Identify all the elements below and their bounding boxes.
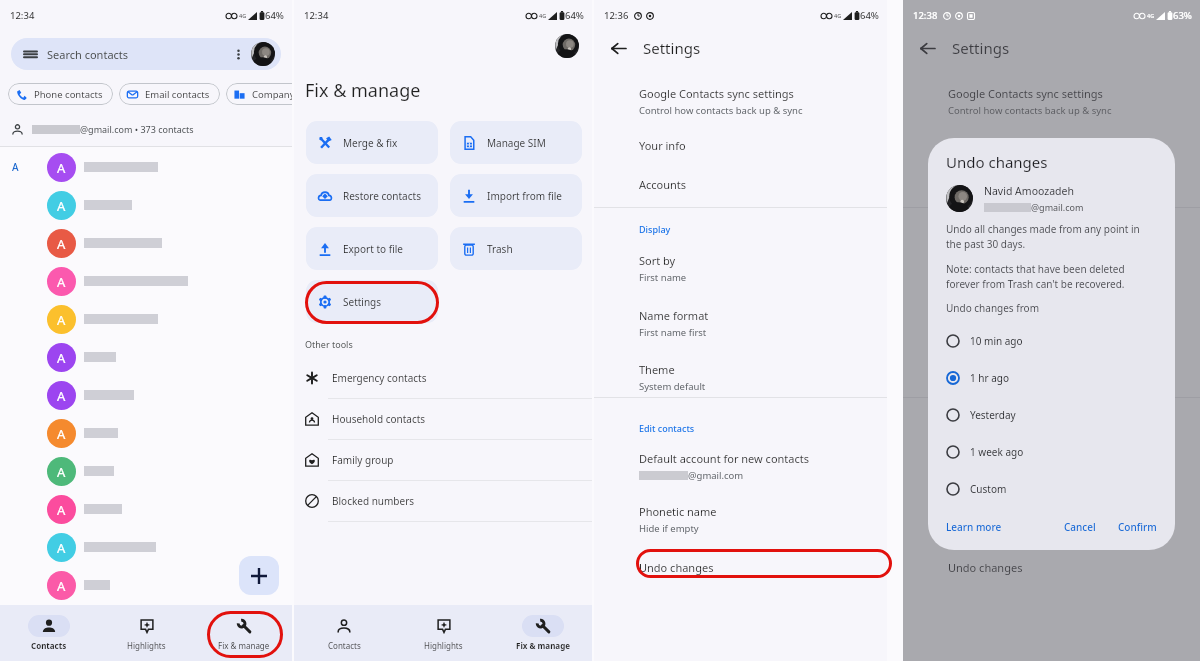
button[interactable]: Merge & fix <box>306 121 438 164</box>
button[interactable]: Your info <box>903 138 1200 153</box>
button[interactable]: Fix & manage <box>493 611 592 655</box>
other: More options <box>232 48 245 61</box>
button[interactable]: Theme <box>903 362 1200 393</box>
staticText: Merge & fix <box>343 136 398 150</box>
staticText: A <box>57 159 66 177</box>
staticText: System default <box>948 380 1015 393</box>
button[interactable]: Confirm <box>1118 516 1157 538</box>
button[interactable]: Contacts <box>0 611 98 655</box>
button[interactable]: A <box>0 490 292 528</box>
staticText: Default account for new contacts <box>948 451 1118 466</box>
button[interactable]: Custom <box>946 470 1157 507</box>
button[interactable]: Cancel <box>1064 516 1096 538</box>
staticText: Undo changes <box>639 560 714 575</box>
button[interactable]: Undo changes <box>594 556 887 578</box>
button[interactable]: @gmail.com • 373 contacts <box>0 118 292 140</box>
button[interactable]: Back <box>915 36 939 60</box>
staticText: Settings <box>952 38 1010 58</box>
button[interactable]: A <box>0 376 292 414</box>
button[interactable]: A <box>0 300 292 338</box>
button[interactable]: Fix & manage <box>195 611 292 655</box>
staticText: 12:38 <box>913 9 938 22</box>
button[interactable]: Sort by <box>903 253 1200 284</box>
staticText: Export to file <box>343 242 403 256</box>
staticText: A <box>57 349 66 367</box>
button[interactable]: Household contacts <box>294 399 592 439</box>
button[interactable]: Google Contacts sync settings <box>594 86 887 117</box>
button[interactable]: A <box>0 414 292 452</box>
staticText: Search contacts <box>47 47 129 62</box>
button[interactable]: A <box>0 262 292 300</box>
button[interactable]: Phone contacts <box>8 83 113 105</box>
staticText: 64% <box>265 9 284 22</box>
staticText: Company <box>252 88 292 101</box>
staticText: Sort by <box>948 253 985 268</box>
button[interactable]: A <box>0 338 292 376</box>
button[interactable]: Default account for new contacts <box>594 451 887 482</box>
staticText: Fix & manage <box>516 640 570 651</box>
button[interactable]: Create contact <box>239 556 279 595</box>
staticText: Custom <box>970 482 1007 496</box>
staticText: A <box>57 425 66 443</box>
button[interactable]: Default account for new contacts <box>903 451 1200 482</box>
button[interactable]: Theme <box>594 362 887 393</box>
button[interactable]: Accounts <box>594 177 887 192</box>
button[interactable]: Email contacts <box>119 83 220 105</box>
button[interactable]: Phonetic name <box>594 504 887 535</box>
button[interactable]: Yesterday <box>946 396 1157 433</box>
button[interactable]: Trash <box>450 227 582 270</box>
button[interactable]: Account <box>251 42 275 66</box>
button[interactable]: Highlights <box>98 611 195 655</box>
button[interactable]: Menu <box>11 38 281 70</box>
staticText: 12:34 <box>10 9 35 22</box>
button[interactable]: Restore contacts <box>306 174 438 217</box>
button[interactable]: Sort by <box>594 253 887 284</box>
staticText: Blocked numbers <box>332 494 415 508</box>
button[interactable]: 10 min ago <box>946 322 1157 359</box>
staticText: First name first <box>639 326 707 339</box>
staticText: Restore contacts <box>343 189 421 203</box>
staticText: 1 week ago <box>970 445 1024 459</box>
button[interactable]: Import from file <box>450 174 582 217</box>
button[interactable]: Emergency contacts <box>294 358 592 398</box>
button[interactable]: A <box>0 148 292 186</box>
button[interactable]: Back <box>606 36 630 60</box>
button[interactable]: A <box>0 186 292 224</box>
staticText: System default <box>639 380 706 393</box>
button[interactable]: A <box>0 452 292 490</box>
button[interactable]: Highlights <box>394 611 493 655</box>
button[interactable]: Google Contacts sync settings <box>903 86 1200 117</box>
button[interactable]: Name format <box>903 308 1200 339</box>
button[interactable]: Manage SIM <box>450 121 582 164</box>
button[interactable]: 1 week ago <box>946 433 1157 470</box>
button[interactable]: A <box>0 566 292 604</box>
staticText: Hide if empty <box>639 522 699 535</box>
button[interactable]: Contacts <box>294 611 394 655</box>
button[interactable]: Export to file <box>306 227 438 270</box>
button[interactable]: Blocked numbers <box>294 481 592 521</box>
button[interactable]: Company <box>226 83 292 105</box>
staticText: 4G <box>834 12 842 19</box>
button[interactable]: Undo changes <box>903 556 1200 578</box>
staticText: A <box>57 273 66 291</box>
staticText: Emergency contacts <box>332 371 427 385</box>
staticText: Yesterday <box>970 408 1016 422</box>
staticText: Undo all changes made from any point in … <box>946 222 1140 251</box>
button[interactable]: 1 hr ago <box>946 359 1157 396</box>
button[interactable]: Family group <box>294 440 592 480</box>
staticText: Fix & manage <box>305 78 421 103</box>
button[interactable]: Phonetic name <box>903 504 1200 535</box>
button[interactable]: Accounts <box>903 177 1200 192</box>
staticText: Theme <box>639 362 675 377</box>
staticText: Name format <box>948 308 1018 323</box>
button[interactable]: A <box>0 224 292 262</box>
button[interactable]: Account <box>555 34 579 58</box>
staticText: Household contacts <box>332 412 426 426</box>
button[interactable]: Settings <box>306 280 438 323</box>
button[interactable]: A <box>0 528 292 566</box>
staticText: Your info <box>639 138 686 153</box>
button[interactable]: Name format <box>594 308 887 339</box>
button[interactable]: Your info <box>594 138 887 153</box>
button[interactable]: Learn more <box>946 516 1002 538</box>
